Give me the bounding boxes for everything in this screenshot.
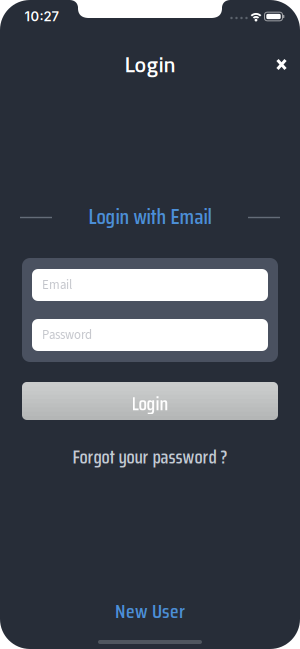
staticText: Password <box>42 326 92 344</box>
button[interactable]: Email <box>32 269 268 301</box>
button[interactable]: Login <box>22 382 278 420</box>
staticText: Email <box>42 276 72 294</box>
staticText: Forgot your password ? <box>72 442 227 472</box>
button[interactable]: Close <box>269 51 294 77</box>
button[interactable]: Password <box>32 319 268 351</box>
button[interactable]: Forgot your password ? <box>66 436 233 478</box>
staticText: Login <box>131 388 168 419</box>
button[interactable]: New User <box>109 589 191 633</box>
staticText: 10:27 <box>24 9 59 24</box>
staticText: Login with Email <box>88 200 211 233</box>
staticText: Login <box>124 47 175 81</box>
staticText: New User <box>115 595 185 627</box>
